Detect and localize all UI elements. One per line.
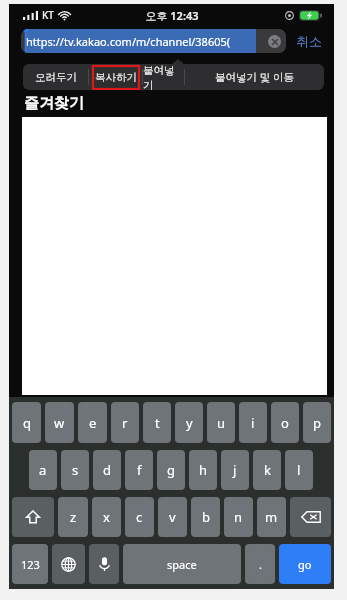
staticText: r xyxy=(122,414,128,432)
button[interactable]: Backspace xyxy=(290,497,331,537)
staticText: https://tv.kakao.com/m/channel/38605( xyxy=(26,34,231,49)
button[interactable]: 오려두기 xyxy=(23,64,88,90)
button[interactable]: Clear text xyxy=(268,35,281,48)
button[interactable]: e xyxy=(78,402,107,443)
staticText: c xyxy=(136,508,143,526)
staticText: v xyxy=(169,508,176,526)
button[interactable]: 123 xyxy=(12,544,48,584)
button[interactable]: w xyxy=(45,402,74,443)
staticText: space xyxy=(167,557,197,572)
staticText: go xyxy=(298,557,312,572)
button[interactable]: c xyxy=(125,497,154,537)
button[interactable]: s xyxy=(61,450,89,490)
staticText: 붙여넣기 xyxy=(143,64,184,90)
button[interactable]: Shift xyxy=(12,497,54,537)
staticText: s xyxy=(72,461,79,479)
button[interactable]: 붙여넣기 xyxy=(143,64,184,90)
staticText: l xyxy=(297,461,301,479)
staticText: i xyxy=(251,414,255,432)
button[interactable]: q xyxy=(12,402,41,443)
button[interactable]: v xyxy=(158,497,187,537)
button[interactable]: . xyxy=(245,544,275,584)
staticText: e xyxy=(89,414,97,432)
button[interactable]: space xyxy=(123,544,241,584)
button[interactable]: p xyxy=(303,402,331,443)
staticText: 복사하기 xyxy=(95,71,137,84)
button[interactable]: b xyxy=(191,497,220,537)
staticText: u xyxy=(217,414,226,432)
staticText: 123 xyxy=(21,557,40,572)
button[interactable]: 취소 xyxy=(294,30,324,52)
staticText: g xyxy=(167,461,175,479)
button[interactable]: d xyxy=(93,450,121,490)
staticText: m xyxy=(265,508,278,526)
staticText: y xyxy=(186,414,193,432)
staticText: x xyxy=(103,508,110,526)
button[interactable]: 붙여넣기 및 이동 xyxy=(185,64,324,90)
button[interactable]: z xyxy=(58,497,88,537)
staticText: KT xyxy=(42,8,54,22)
button[interactable]: Dictation xyxy=(89,544,119,584)
button[interactable]: x xyxy=(92,497,121,537)
button[interactable]: Change keyboard xyxy=(52,544,85,584)
staticText: o xyxy=(281,414,289,432)
staticText: h xyxy=(199,461,208,479)
button[interactable]: n xyxy=(224,497,253,537)
staticText: 취소 xyxy=(296,33,322,49)
staticText: 즐겨찾기 xyxy=(24,94,84,113)
button[interactable]: g xyxy=(157,450,185,490)
button[interactable]: go xyxy=(279,544,331,584)
button[interactable]: h xyxy=(189,450,217,490)
button[interactable]: m xyxy=(257,497,286,537)
staticText: t xyxy=(155,414,160,432)
staticText: z xyxy=(70,508,77,526)
button[interactable]: t xyxy=(143,402,171,443)
staticText: w xyxy=(54,414,65,432)
button[interactable]: a xyxy=(29,450,57,490)
staticText: n xyxy=(234,508,243,526)
staticText: 오려두기 xyxy=(35,71,77,84)
staticText: p xyxy=(313,414,321,432)
staticText: 붙여넣기 및 이동 xyxy=(215,70,294,84)
button[interactable]: https://tv.kakao.com/m/channel/38605( xyxy=(21,29,286,53)
button[interactable]: l xyxy=(285,450,313,490)
button[interactable]: i xyxy=(239,402,267,443)
staticText: . xyxy=(259,557,262,572)
staticText: q xyxy=(23,414,31,432)
button[interactable]: r xyxy=(111,402,139,443)
button[interactable]: 복사하기 xyxy=(89,64,142,90)
button[interactable]: j xyxy=(221,450,249,490)
staticText: d xyxy=(103,461,111,479)
staticText: k xyxy=(264,461,271,479)
button[interactable]: u xyxy=(207,402,235,443)
staticText: j xyxy=(233,461,237,479)
button[interactable]: y xyxy=(175,402,203,443)
button[interactable]: o xyxy=(271,402,299,443)
button[interactable]: f xyxy=(125,450,153,490)
staticText: f xyxy=(137,461,142,479)
staticText: b xyxy=(202,508,210,526)
staticText: a xyxy=(39,461,47,479)
staticText: 오후 12:43 xyxy=(145,8,199,23)
button[interactable]: k xyxy=(253,450,281,490)
